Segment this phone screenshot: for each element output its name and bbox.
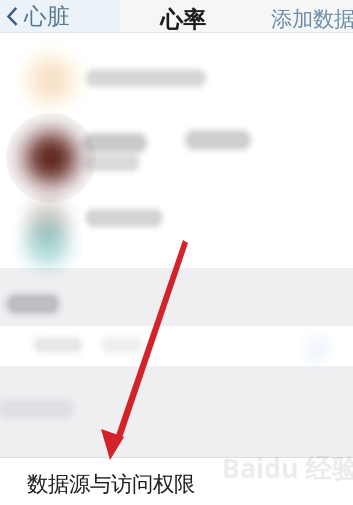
button[interactable]: 数据源与访问权限 [0, 458, 353, 505]
button[interactable]: 心脏 [7, 6, 70, 27]
staticText: 数据源与访问权限 [27, 471, 195, 497]
staticText: 心脏 [24, 3, 70, 30]
button[interactable]: 添加数据 [271, 6, 353, 32]
staticText: 添加数据 [271, 6, 353, 32]
staticText: 心率 [160, 6, 206, 34]
staticText: Baidu 经验 [222, 450, 353, 486]
